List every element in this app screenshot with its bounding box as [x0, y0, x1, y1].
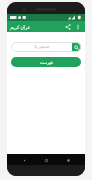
button[interactable]: جستجو: [11, 42, 81, 52]
button[interactable]: Home: [41, 155, 51, 165]
button[interactable]: More options: [73, 22, 82, 31]
button[interactable]: Share: [63, 22, 72, 31]
staticText: فهرست: [40, 60, 53, 65]
button[interactable]: Search: [72, 42, 81, 52]
staticText: قرآن کریم: [10, 24, 30, 30]
button[interactable]: Back: [19, 155, 29, 165]
button[interactable]: فهرست: [11, 57, 81, 67]
staticText: جستجو: [39, 45, 50, 49]
button[interactable]: Recent apps: [63, 155, 73, 165]
